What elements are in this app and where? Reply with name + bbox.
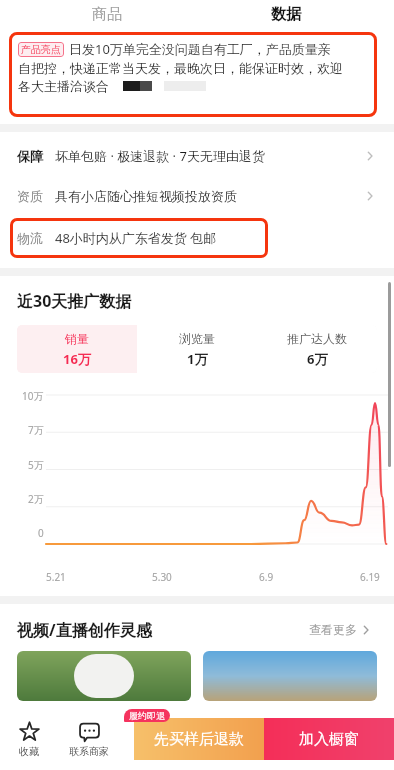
button[interactable] — [203, 651, 377, 701]
staticText: 5.30 — [152, 570, 172, 584]
button[interactable]: 推广达人数 — [257, 325, 377, 373]
staticText: 视频/直播创作灵感 — [17, 619, 152, 641]
staticText: 联系商家 — [69, 745, 109, 758]
staticText: 7万 — [28, 423, 44, 435]
staticText: 坏单包赔 · 极速退款 · 7天无理由退货 — [55, 147, 265, 165]
staticText: 2万 — [28, 492, 44, 504]
button[interactable]: 浏览量 — [137, 325, 257, 373]
staticText: 各大主播洽谈合 — [18, 78, 109, 94]
staticText: 保障 — [17, 148, 43, 164]
staticText: 数据 — [271, 5, 301, 24]
button[interactable]: 收藏 — [0, 708, 58, 770]
staticText: 具有小店随心推短视频投放资质 — [55, 188, 237, 204]
button[interactable]: 联系商家 — [58, 708, 120, 770]
staticText: 5.21 — [46, 570, 66, 584]
staticText: 推广达人数 — [287, 331, 347, 346]
staticText: 收藏 — [19, 745, 39, 758]
staticText: 资质 — [17, 188, 43, 204]
staticText: 6万 — [307, 350, 328, 368]
staticText: 10万 — [22, 389, 44, 401]
staticText: 销量 — [65, 331, 89, 346]
staticText: 查看更多 — [309, 622, 357, 637]
staticText: 近30天推广数据 — [17, 290, 132, 312]
staticText: 履约即退 — [129, 710, 165, 721]
staticText: 16万 — [63, 350, 91, 368]
button[interactable]: 资质 — [0, 176, 394, 216]
button[interactable] — [17, 651, 191, 701]
button[interactable]: 先买样后退款 — [134, 718, 264, 760]
staticText: 加入橱窗 — [299, 730, 359, 749]
button[interactable]: 物流 — [0, 216, 394, 260]
staticText: 1万 — [187, 350, 208, 368]
staticText: 6.9 — [259, 570, 274, 584]
staticText: 48小时内从广东省发货 包邮 — [55, 229, 217, 247]
staticText: 5万 — [28, 458, 44, 470]
button[interactable]: 查看更多 — [305, 618, 377, 641]
button[interactable]: 销量 — [17, 325, 137, 373]
staticText: 商品 — [92, 5, 122, 24]
staticText: 物流 — [17, 230, 43, 246]
button[interactable]: 保障 — [0, 136, 394, 176]
button[interactable]: 加入橱窗 — [264, 718, 394, 760]
staticText: 产品亮点 — [21, 43, 61, 56]
button[interactable]: 商品 — [84, 3, 130, 26]
staticText: 6.19 — [360, 570, 380, 584]
staticText: 浏览量 — [179, 331, 215, 346]
staticText: 先买样后退款 — [154, 730, 244, 749]
staticText: 日发10万单完全没问题自有工厂，产品质量亲 — [69, 40, 331, 58]
staticText: 自把控，快递正常当天发，最晚次日，能保证时效，欢迎 — [18, 60, 343, 76]
staticText: 0 — [38, 526, 44, 538]
button[interactable]: 数据 — [263, 3, 309, 26]
